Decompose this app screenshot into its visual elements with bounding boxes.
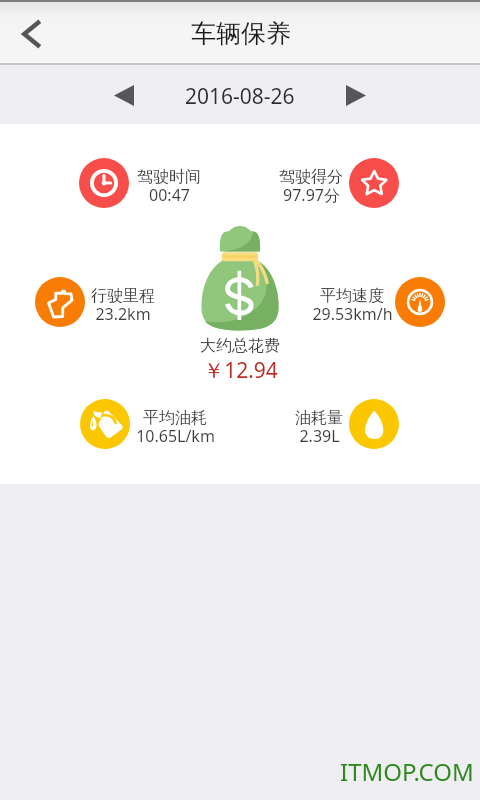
button[interactable]: Back — [0, 1, 64, 63]
button[interactable]: Next day — [332, 72, 379, 119]
staticText: 23.2km — [95, 303, 151, 325]
staticText: 10.65L/km — [136, 425, 215, 447]
button[interactable]: 平均油耗 — [80, 399, 130, 449]
staticText: 2016-08-26 — [185, 82, 295, 111]
button[interactable]: 油耗量 — [349, 399, 399, 449]
staticText: 97.97分 — [283, 184, 340, 206]
button[interactable]: 驾驶得分 — [349, 158, 399, 208]
staticText: ITMOP.COM — [340, 755, 474, 788]
button[interactable]: Previous day — [100, 72, 147, 119]
button[interactable]: 平均速度 — [395, 277, 445, 327]
staticText: 00:47 — [149, 184, 190, 206]
button[interactable]: 行驶里程 — [35, 277, 85, 327]
staticText: 油耗量 — [295, 408, 343, 428]
staticText: 平均速度 — [320, 286, 384, 306]
staticText: 行驶里程 — [91, 286, 155, 306]
staticText: 平均油耗 — [143, 408, 207, 428]
staticText: 2.39L — [299, 425, 340, 447]
staticText: 29.53km/h — [312, 303, 393, 325]
button[interactable]: 驾驶时间 — [79, 158, 129, 208]
staticText: 车辆保养 — [191, 18, 291, 49]
staticText: 驾驶时间 — [137, 167, 201, 187]
staticText: ￥12.94 — [203, 356, 278, 385]
staticText: 驾驶得分 — [279, 167, 343, 187]
staticText: 大约总花费 — [200, 336, 280, 356]
